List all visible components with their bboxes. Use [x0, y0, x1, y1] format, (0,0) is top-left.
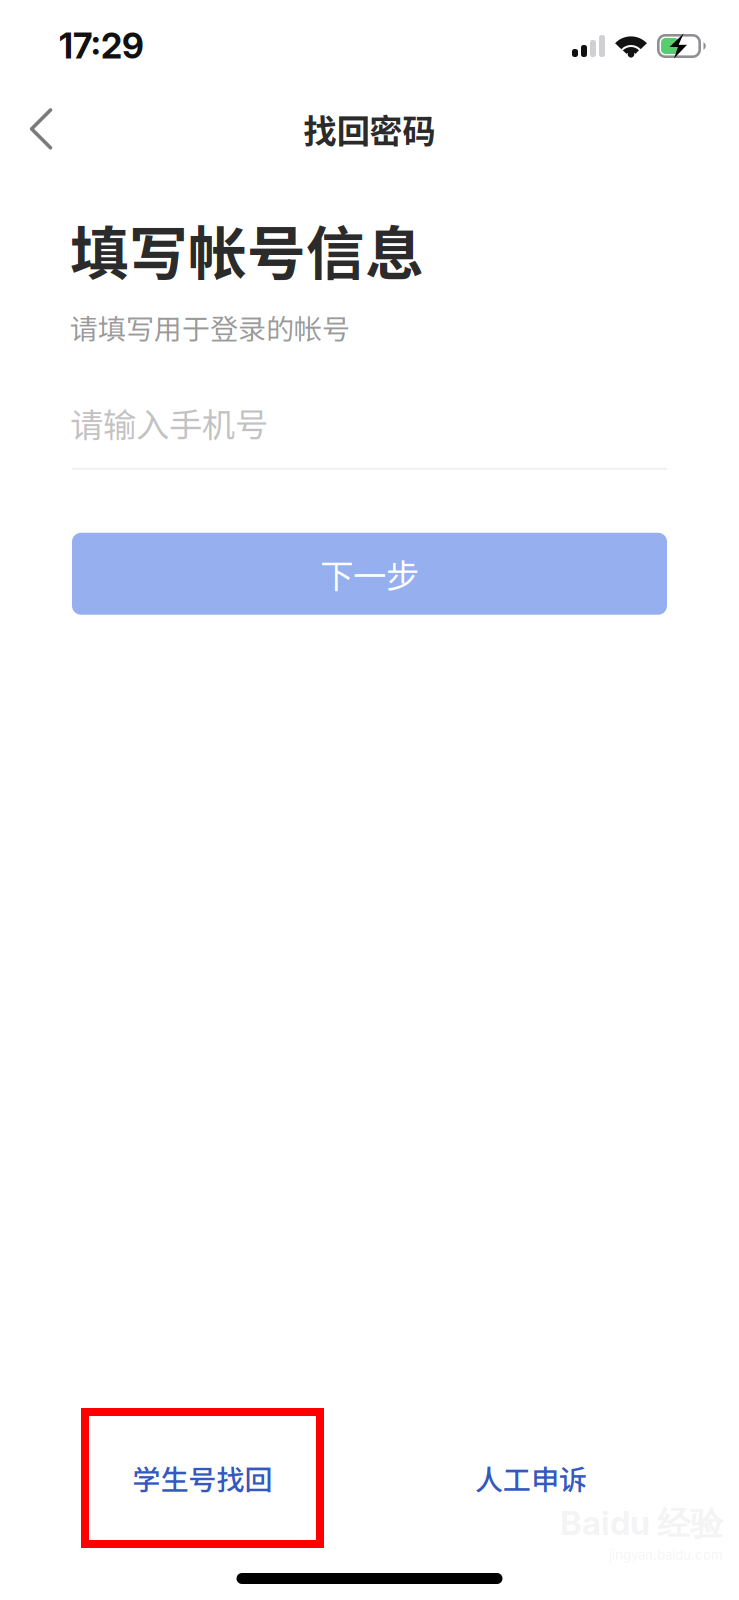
staticText: jingyan.baidu.com [609, 1547, 723, 1563]
staticText: 找回密码 [303, 105, 435, 153]
button[interactable]: 下一步 [72, 533, 667, 615]
button[interactable]: 人工申诉 [451, 1408, 611, 1548]
staticText: 人工申诉 [475, 1458, 587, 1498]
button[interactable]: Back [12, 90, 70, 168]
staticText: Baidu 经验 [560, 1503, 723, 1545]
staticText: 学生号找回 [132, 1458, 272, 1498]
button[interactable]: 学生号找回 [81, 1408, 324, 1548]
staticText: 请填写用于登录的帐号 [70, 307, 350, 347]
staticText: 下一步 [320, 550, 419, 598]
staticText: 17:29 [59, 25, 144, 67]
staticText: 填写帐号信息 [70, 207, 424, 292]
button[interactable]: 请输入手机号 [72, 347, 667, 470]
staticText: 请输入手机号 [70, 398, 268, 447]
